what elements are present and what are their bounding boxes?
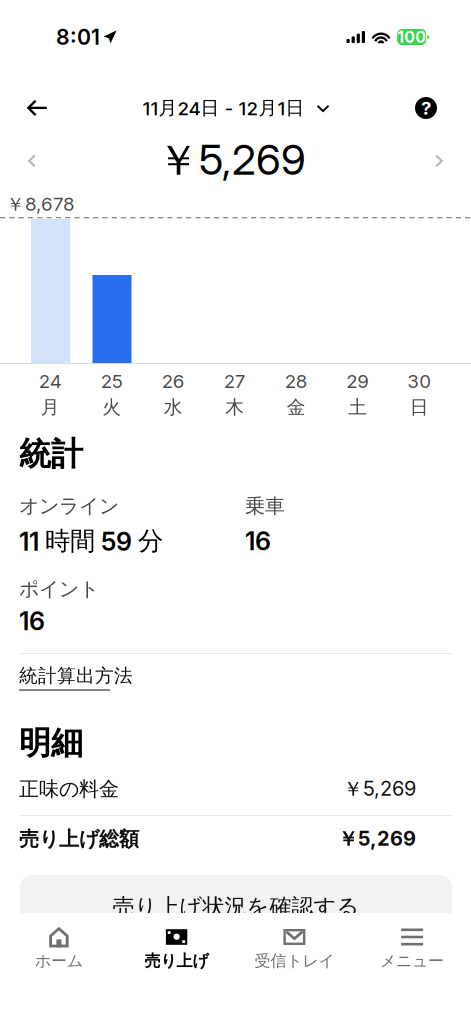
staticText: ￥5,269 <box>343 776 416 802</box>
staticText: 明細 <box>19 723 83 763</box>
staticText: ￥5,269 <box>157 134 306 187</box>
staticText: ポイント <box>19 576 99 602</box>
staticText: 受信トレイ <box>254 951 334 971</box>
staticText: 11月24日 - 12月1日 <box>142 96 304 120</box>
staticText: 木 <box>225 396 244 419</box>
button[interactable]: 11月24日 - 12月1日 <box>0 0 471 1024</box>
staticText: 売り上げ <box>145 951 209 971</box>
staticText: ホーム <box>35 951 83 971</box>
button[interactable]: Next period <box>0 0 471 1024</box>
staticText: ￥5,269 <box>338 826 416 852</box>
staticText: 月 <box>41 396 60 419</box>
staticText: オンライン <box>19 493 119 519</box>
button[interactable]: 売り上げ状況を確認する <box>0 0 471 1024</box>
button[interactable]: Back <box>0 0 471 1024</box>
staticText: 100 <box>397 27 426 47</box>
button[interactable]: 統計算出方法 <box>0 0 471 1024</box>
staticText: 29 <box>346 370 369 393</box>
staticText: 統計算出方法 <box>19 664 133 687</box>
staticText: メニュー <box>380 951 444 971</box>
staticText: 正味の料金 <box>19 776 119 802</box>
button[interactable]: Help <box>0 0 471 1024</box>
staticText: 売り上げ総額 <box>19 826 139 852</box>
button[interactable]: Previous period <box>0 0 471 1024</box>
staticText: 日 <box>410 396 429 419</box>
button[interactable]: ホーム <box>0 0 471 1024</box>
staticText: 28 <box>285 370 308 393</box>
staticText: 24 <box>39 370 62 393</box>
staticText: 26 <box>162 370 185 393</box>
staticText: 25 <box>101 370 123 393</box>
staticText: 土 <box>348 396 367 419</box>
staticText: 金 <box>287 396 306 419</box>
staticText: 火 <box>102 396 121 419</box>
staticText: 統計 <box>19 434 83 474</box>
staticText: 8:01 <box>56 24 100 50</box>
staticText: 27 <box>224 370 246 393</box>
staticText: 30 <box>407 370 431 393</box>
staticText: 乗車 <box>245 493 285 519</box>
staticText: 水 <box>164 396 183 419</box>
staticText: 16 <box>245 526 271 556</box>
staticText: 売り上げ状況を確認する <box>112 893 359 921</box>
button[interactable]: 売り上げ <box>0 0 471 1024</box>
staticText: ￥8,678 <box>6 193 75 216</box>
button[interactable]: 受信トレイ <box>0 0 471 1024</box>
button[interactable]: メニュー <box>0 0 471 1024</box>
staticText: ? <box>421 97 431 119</box>
staticText: 11 時間 59 分 <box>19 525 163 557</box>
staticText: 16 <box>19 606 45 636</box>
